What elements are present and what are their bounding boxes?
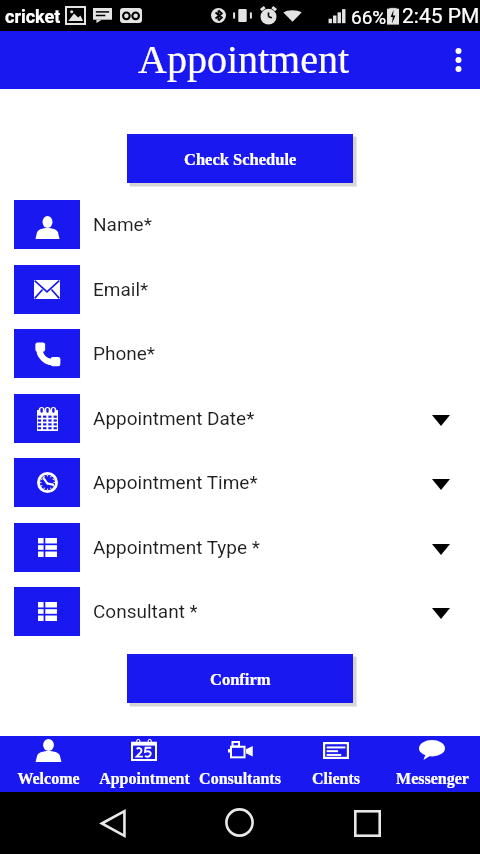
staticText: 66% (351, 6, 387, 28)
button[interactable]: Phone* (0, 329, 480, 378)
staticText: Consultant * (93, 600, 198, 622)
button[interactable]: Consultants (192, 736, 288, 792)
staticText: Consultants (199, 770, 281, 788)
staticText: Confirm (210, 670, 271, 688)
button[interactable]: Email* (0, 265, 480, 314)
button[interactable]: Appointment Date* (0, 394, 480, 443)
button[interactable]: Clients (288, 736, 384, 792)
button[interactable]: Home (209, 792, 269, 852)
staticText: Appointment (138, 37, 350, 81)
staticText: Email* (93, 278, 149, 300)
button[interactable]: More options (436, 31, 480, 89)
button[interactable]: Messenger (384, 736, 480, 792)
staticText: Appointment Date* (93, 407, 255, 429)
staticText: Welcome (17, 770, 80, 788)
staticText: Name* (93, 213, 152, 235)
staticText: Clients (312, 770, 360, 788)
button[interactable]: Appointment Time* (0, 458, 480, 507)
staticText: Phone* (93, 342, 156, 364)
button[interactable]: Recent apps (337, 793, 397, 853)
staticText: Appointment (99, 770, 190, 788)
button[interactable]: Check Schedule (127, 134, 353, 183)
button[interactable]: Confirm (127, 654, 353, 703)
button[interactable]: Back (83, 793, 143, 853)
staticText: 2:45 PM (402, 4, 480, 29)
button[interactable]: Appointment Type * (0, 523, 480, 572)
staticText: Appointment Type * (93, 536, 260, 558)
staticText: cricket (5, 6, 61, 27)
staticText: Messenger (396, 770, 469, 788)
button[interactable]: Name* (0, 200, 480, 249)
button[interactable]: Welcome (0, 736, 96, 792)
staticText: Appointment Time* (93, 471, 258, 493)
button[interactable]: Appointment (96, 736, 192, 792)
button[interactable]: Consultant * (0, 587, 480, 636)
staticText: Check Schedule (184, 150, 297, 168)
